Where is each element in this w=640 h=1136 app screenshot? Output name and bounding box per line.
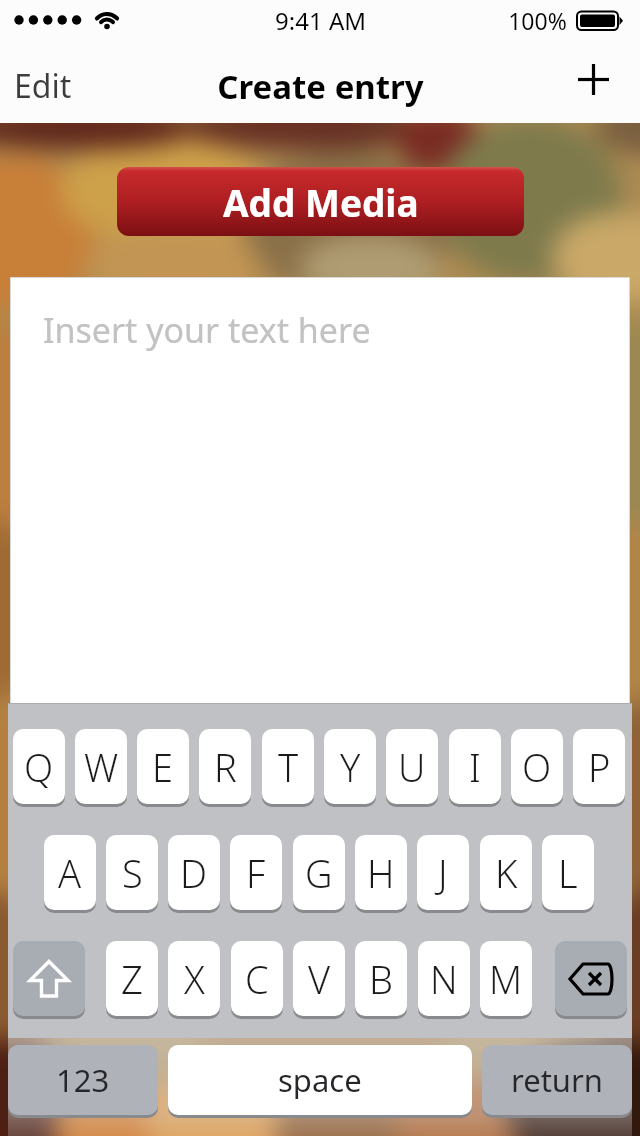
staticText: W <box>84 741 119 793</box>
button[interactable]: O <box>511 729 563 804</box>
button[interactable]: R <box>199 729 251 804</box>
button[interactable]: G <box>293 835 345 910</box>
staticText: I <box>469 741 481 793</box>
staticText: Z <box>121 953 143 1005</box>
staticText: Create entry <box>217 64 424 109</box>
button[interactable]: U <box>386 729 438 804</box>
staticText: V <box>308 953 331 1005</box>
staticText: K <box>495 847 518 899</box>
staticText: D <box>180 847 208 899</box>
button[interactable]: F <box>230 835 282 910</box>
button[interactable]: Add Media <box>117 167 524 236</box>
button[interactable]: K <box>480 835 532 910</box>
button[interactable]: P <box>573 729 625 804</box>
button[interactable]: Y <box>324 729 376 804</box>
button[interactable]: I <box>449 729 501 804</box>
button[interactable]: X <box>168 941 220 1016</box>
staticText: Insert your text here <box>43 307 371 353</box>
staticText: O <box>522 741 552 793</box>
button[interactable]: Edit <box>6 60 116 112</box>
button[interactable] <box>13 941 85 1016</box>
button[interactable]: B <box>355 941 407 1016</box>
staticText: B <box>369 953 393 1005</box>
button[interactable]: M <box>480 941 532 1016</box>
staticText: 100% <box>508 5 567 36</box>
button[interactable]: Q <box>13 729 65 804</box>
staticText: A <box>58 847 82 899</box>
staticText: return <box>511 1059 603 1101</box>
button[interactable]: S <box>106 835 158 910</box>
button[interactable] <box>560 51 626 107</box>
button[interactable]: W <box>75 729 127 804</box>
staticText: F <box>246 847 266 899</box>
staticText: M <box>489 953 523 1005</box>
button[interactable]: A <box>44 835 96 910</box>
button[interactable]: N <box>418 941 470 1016</box>
staticText: Q <box>24 741 54 793</box>
staticText: H <box>367 847 395 899</box>
staticText: Edit <box>14 64 72 108</box>
staticText: space <box>278 1059 362 1101</box>
staticText: S <box>122 847 143 899</box>
button[interactable] <box>555 941 627 1016</box>
staticText: Add Media <box>223 177 419 227</box>
staticText: X <box>184 953 205 1005</box>
staticText: N <box>430 953 458 1005</box>
staticText: C <box>245 953 269 1005</box>
button[interactable]: return <box>482 1045 632 1115</box>
button[interactable]: J <box>417 835 469 910</box>
staticText: Y <box>340 741 361 793</box>
staticText: G <box>305 847 333 899</box>
button[interactable]: space <box>168 1045 472 1115</box>
button[interactable]: D <box>168 835 220 910</box>
staticText: T <box>278 741 299 793</box>
button[interactable]: E <box>137 729 189 804</box>
button[interactable]: 123 <box>8 1045 158 1115</box>
staticText: R <box>214 741 237 793</box>
staticText: L <box>558 847 578 899</box>
button[interactable]: C <box>231 941 283 1016</box>
button[interactable]: T <box>262 729 314 804</box>
staticText: 123 <box>56 1059 110 1101</box>
button[interactable]: L <box>542 835 594 910</box>
button[interactable]: V <box>293 941 345 1016</box>
staticText: 9:41 AM <box>275 4 366 37</box>
staticText: U <box>398 741 426 793</box>
button[interactable]: Insert your text here <box>10 277 630 704</box>
button[interactable]: Z <box>106 941 158 1016</box>
button[interactable]: H <box>355 835 407 910</box>
staticText: J <box>438 847 448 899</box>
staticText: E <box>152 741 174 793</box>
staticText: P <box>588 741 611 793</box>
